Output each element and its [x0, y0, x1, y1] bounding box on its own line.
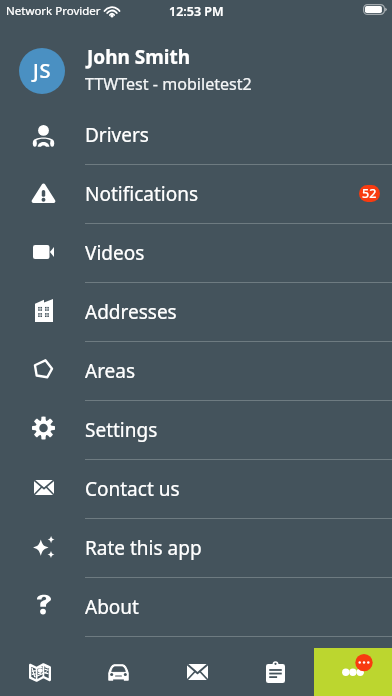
button[interactable]: Notifications	[0, 165, 392, 224]
button[interactable]: Settings	[0, 401, 392, 460]
staticText: Areas	[85, 358, 136, 384]
staticText: Drivers	[85, 122, 149, 148]
button[interactable]: Rate this app	[0, 519, 392, 578]
staticText: John Smith	[87, 44, 191, 70]
staticText: TTWTest - mobiletest2	[85, 73, 252, 95]
button[interactable]: About	[0, 578, 392, 637]
staticText: 52	[362, 185, 377, 202]
button[interactable]: Messages	[158, 648, 236, 696]
staticText: Contact us	[85, 476, 180, 502]
button[interactable]: Vehicles	[79, 648, 158, 696]
staticText: Videos	[85, 240, 145, 266]
button[interactable]: Drivers	[0, 106, 392, 165]
staticText: About	[85, 594, 139, 620]
staticText: JS	[33, 57, 51, 84]
button[interactable]: JS	[0, 36, 392, 106]
staticText: Notifications	[85, 181, 199, 207]
staticText: Settings	[85, 417, 158, 443]
staticText: Network Provider	[6, 3, 101, 19]
button[interactable]: Chat	[314, 648, 392, 696]
button[interactable]: Jobs	[236, 648, 314, 696]
button[interactable]: Areas	[0, 342, 392, 401]
staticText: Rate this app	[85, 535, 202, 561]
button[interactable]: Videos	[0, 224, 392, 283]
staticText: Addresses	[85, 299, 177, 325]
button[interactable]: Contact us	[0, 460, 392, 519]
staticText: 12:53 PM	[169, 3, 224, 20]
button[interactable]: Addresses	[0, 283, 392, 342]
button[interactable]: Map	[0, 648, 79, 696]
